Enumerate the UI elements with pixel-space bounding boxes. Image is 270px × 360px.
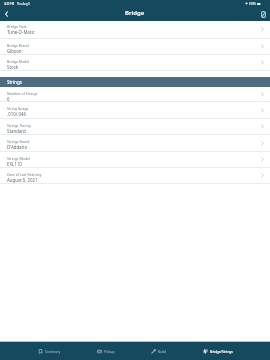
button[interactable]: Strings Model (0, 152, 270, 168)
staticText: Standard (7, 128, 26, 134)
button[interactable]: Number of Strings (0, 87, 270, 102)
button[interactable]: Strings Tuning (0, 119, 270, 135)
staticText: D'Addario (7, 144, 28, 150)
button[interactable]: Bridge Model (0, 55, 270, 71)
button[interactable]: String Guage (0, 102, 270, 119)
staticText: .010/.046 (7, 111, 27, 117)
staticText: August 5, 2021 (7, 177, 38, 183)
staticText: Thu Aug 5 (17, 2, 30, 6)
staticText: Bridge/Strings (210, 349, 233, 354)
staticText: Date of Last Restring (7, 172, 42, 177)
button[interactable]: Date of Last Restring (0, 168, 270, 184)
staticText: String Guage (7, 106, 29, 111)
staticText: Strings Brand (7, 139, 30, 144)
button[interactable]: Bridge Brand (0, 39, 270, 55)
button[interactable]: Back (0, 7, 13, 21)
staticText: Strings Tuning (7, 123, 31, 128)
button[interactable]: Edit (256, 7, 270, 21)
staticText: Bridge Style (7, 24, 27, 29)
staticText: Tune-O-Matic (7, 29, 35, 35)
staticText: Stock (7, 64, 19, 70)
staticText: EXL110 (7, 161, 22, 167)
button[interactable]: Bridge/Strings (203, 342, 233, 360)
button[interactable]: Build (151, 342, 167, 360)
staticText: Bridge Brand (7, 43, 29, 48)
staticText: Build (158, 349, 167, 354)
staticText: 100% (249, 2, 256, 6)
staticText: Strings Model (7, 156, 30, 161)
button[interactable]: Summary (38, 342, 61, 360)
button[interactable]: Bridge Style (0, 21, 270, 39)
staticText: Summary (45, 349, 61, 354)
staticText: 4:20 PM (4, 2, 15, 6)
staticText: Pickup (104, 349, 115, 354)
staticText: Number of Strings (7, 91, 38, 96)
button[interactable]: Pickup (97, 342, 115, 360)
staticText: Strings (7, 79, 22, 85)
staticText: Bridge (125, 9, 145, 17)
staticText: Bridge Model (7, 59, 30, 64)
staticText: Gibson (7, 48, 22, 54)
staticText: 6 (7, 96, 10, 101)
button[interactable]: Strings Brand (0, 135, 270, 152)
